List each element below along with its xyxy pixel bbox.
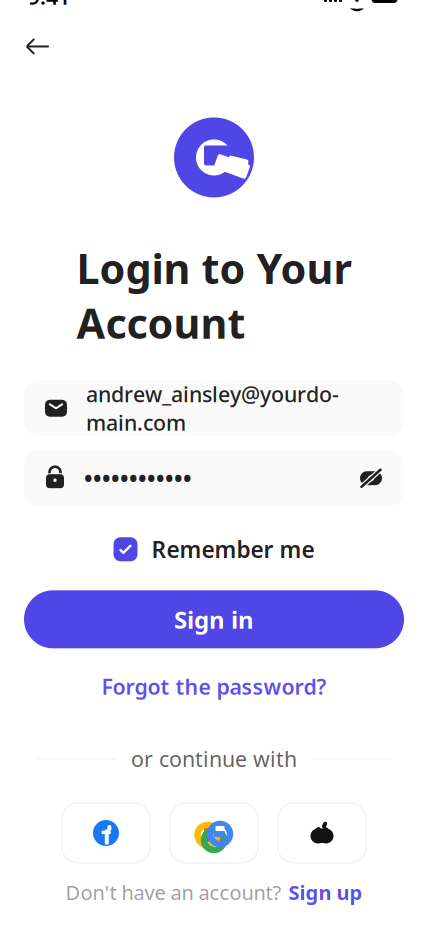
staticText: Login to Your Account <box>76 240 351 350</box>
staticText: •••••••••••• <box>84 463 192 493</box>
button[interactable]: Sign in with Facebook <box>62 803 150 863</box>
button[interactable]: Back <box>16 24 60 68</box>
staticText: Sign in <box>174 603 254 635</box>
staticText: Don't have an account? <box>65 879 281 906</box>
button[interactable]: Remember me <box>103 526 324 572</box>
staticText: 9:41 <box>28 0 70 11</box>
staticText: or continue with <box>131 745 297 773</box>
button[interactable]: Forgot the password? <box>89 664 338 709</box>
button[interactable]: Don't have an account? <box>65 871 362 914</box>
staticText: Forgot the password? <box>101 672 326 701</box>
staticText: Remember me <box>151 534 314 564</box>
button[interactable]: Show password <box>358 466 384 490</box>
button[interactable]: Sign in with Apple <box>278 803 366 863</box>
staticText: andrew_ainsley@yourdomain.com <box>86 380 339 437</box>
button[interactable]: Sign in <box>24 590 404 648</box>
staticText: Sign up <box>288 879 362 906</box>
button[interactable]: Sign in with Google <box>170 803 258 863</box>
